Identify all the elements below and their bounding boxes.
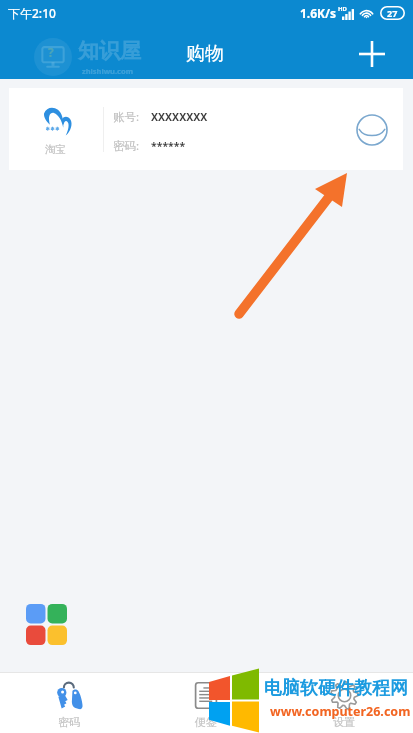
button[interactable]: Add account: [352, 34, 392, 74]
staticText: ?: [48, 44, 54, 60]
button[interactable]: App shortcuts: [26, 604, 67, 645]
staticText: XXXXXXXX: [151, 110, 208, 124]
staticText: ******: [151, 139, 186, 153]
button[interactable]: 淘宝: [9, 88, 403, 170]
staticText: 电脑软硬件教程网: [264, 677, 408, 700]
staticText: 密码:: [113, 138, 140, 154]
staticText: 淘宝: [45, 143, 66, 156]
staticText: 购物: [186, 42, 224, 66]
button[interactable]: 便签: [137, 673, 275, 733]
staticText: 便签: [195, 715, 217, 729]
staticText: 下午2:10: [8, 5, 56, 21]
staticText: 知识屋: [78, 38, 141, 64]
staticText: 27: [387, 7, 398, 19]
staticText: HD: [338, 5, 347, 13]
staticText: www.computer26.com: [270, 703, 411, 720]
button[interactable]: Account avatar: [353, 111, 391, 149]
button[interactable]: 设置: [275, 673, 413, 733]
staticText: 账号:: [113, 109, 140, 125]
button[interactable]: 密码: [0, 673, 137, 733]
staticText: 设置: [333, 715, 355, 729]
staticText: zhishiwu.com: [82, 66, 133, 76]
staticText: 密码: [58, 715, 80, 729]
staticText: 1.6K/s: [300, 5, 337, 21]
